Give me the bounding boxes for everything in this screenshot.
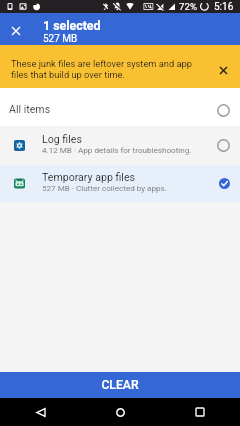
button[interactable]: Back bbox=[0, 398, 80, 426]
staticText: 72% bbox=[179, 1, 197, 12]
staticText: Log files bbox=[42, 133, 82, 145]
button[interactable]: Dismiss banner bbox=[207, 54, 240, 86]
staticText: 5:16 bbox=[214, 1, 234, 13]
button[interactable]: Log files bbox=[0, 126, 240, 165]
button[interactable]: All items bbox=[0, 88, 240, 126]
staticText: 1 selected bbox=[43, 18, 101, 33]
button[interactable]: Recent apps bbox=[160, 398, 240, 426]
button[interactable]: Close bbox=[0, 15, 31, 47]
staticText: These junk files are leftover system and… bbox=[11, 58, 197, 80]
staticText: All items bbox=[9, 103, 51, 115]
button[interactable]: CLEAR bbox=[0, 372, 240, 398]
button[interactable]: Temporary app files bbox=[0, 165, 240, 202]
staticText: CLEAR bbox=[101, 378, 139, 392]
staticText: 527 MB · Clutter collected by apps. bbox=[42, 183, 167, 192]
staticText: Temporary app files bbox=[42, 171, 135, 183]
button[interactable]: Home bbox=[80, 398, 160, 426]
staticText: 527 MB bbox=[43, 33, 78, 45]
staticText: 4.12 MB · App details for troubleshootin… bbox=[42, 145, 192, 154]
